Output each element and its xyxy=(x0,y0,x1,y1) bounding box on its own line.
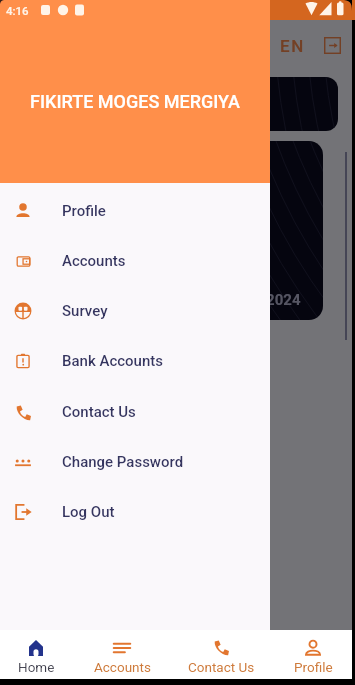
button[interactable]: Contact Us xyxy=(179,630,263,679)
button[interactable]: Log Out xyxy=(0,487,270,537)
staticText: Profile xyxy=(62,202,106,220)
button[interactable]: Change Password xyxy=(0,437,270,487)
staticText: SEP 2024 xyxy=(235,291,301,309)
button[interactable]: Survey xyxy=(0,286,270,336)
button[interactable]: Profile xyxy=(0,186,270,236)
staticText: Log Out xyxy=(62,503,115,521)
staticText: Profile xyxy=(294,659,333,675)
button[interactable]: Bank Accounts xyxy=(0,336,270,386)
staticText: 4:16 xyxy=(6,4,29,17)
staticText: EN xyxy=(280,36,305,56)
staticText: FIKIRTE MOGES MERGIYA xyxy=(30,91,241,112)
button[interactable]: Accounts xyxy=(0,236,270,286)
staticText: Survey xyxy=(62,302,108,320)
button[interactable]: Profile xyxy=(271,630,355,679)
staticText: ETHIOPIA xyxy=(200,91,268,109)
staticText: Accounts xyxy=(62,252,126,270)
button[interactable]: Home xyxy=(0,630,78,679)
staticText: Change Password xyxy=(62,453,184,471)
button[interactable]: Contact Us xyxy=(0,387,270,437)
button[interactable]: EN xyxy=(275,30,309,62)
staticText: Contact Us xyxy=(62,403,136,421)
staticText: Accounts xyxy=(94,659,151,675)
button[interactable]: Accounts xyxy=(80,630,164,679)
button[interactable]: Log out xyxy=(317,30,347,60)
staticText: Home xyxy=(18,659,55,675)
staticText: Bank Accounts xyxy=(62,352,163,370)
staticText: Contact Us xyxy=(188,659,255,675)
